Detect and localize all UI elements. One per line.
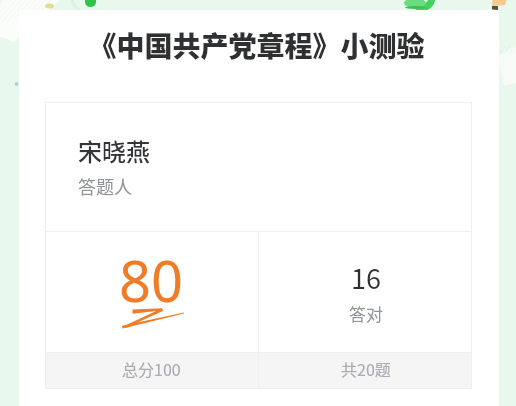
- button[interactable]: 宋晓燕: [45, 102, 472, 231]
- staticText: 80: [119, 242, 184, 318]
- button[interactable]: 得分 80 分，总分 100: [45, 232, 258, 352]
- staticText: 16: [351, 258, 381, 297]
- staticText: 共20题: [341, 357, 391, 380]
- staticText: 答对: [349, 301, 383, 326]
- button[interactable]: 总分100: [45, 353, 258, 389]
- staticText: 宋晓燕: [78, 133, 150, 168]
- staticText: 总分100: [122, 357, 181, 380]
- button[interactable]: 宋晓燕: [45, 102, 472, 389]
- staticText: 答题人: [78, 173, 132, 199]
- staticText: 《中国共产党章程》小测验: [88, 25, 425, 66]
- button[interactable]: 16: [259, 232, 472, 352]
- button[interactable]: 共20题: [259, 353, 472, 389]
